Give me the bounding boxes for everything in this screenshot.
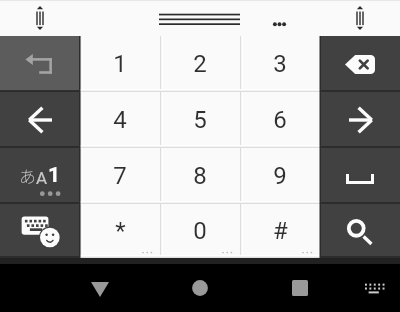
button[interactable]: 9 [240,148,320,204]
staticText: 1 [48,163,61,188]
button[interactable]: Undo [0,36,80,92]
button[interactable]: Resize keyboard [12,0,68,36]
button[interactable]: Move keyboard [149,0,250,36]
button[interactable]: Switch keyboard [350,264,400,312]
staticText: # [273,217,288,245]
staticText: 3 [273,50,287,78]
button[interactable]: 6 [240,92,320,148]
button[interactable]: Resize keyboard [332,0,388,36]
button[interactable]: Hide keyboard [65,264,135,312]
button[interactable]: 7 [80,148,160,204]
button[interactable]: Home [165,264,235,312]
staticText: 5 [193,106,207,134]
button[interactable]: 8 [160,148,240,204]
button[interactable]: 0 [160,204,240,258]
staticText: * [115,217,126,245]
button[interactable]: # [240,204,320,258]
button[interactable]: 1 [80,36,160,92]
button[interactable]: Space [320,148,400,204]
staticText: 7 [113,162,127,190]
button[interactable]: Move cursor left [0,92,80,148]
staticText: 0 [193,217,207,245]
button[interactable]: Move cursor right [320,92,400,148]
staticText: 2 [193,50,207,78]
staticText: 4 [113,106,127,134]
staticText: A [36,168,48,188]
button[interactable]: Search [320,204,400,258]
staticText: 9 [273,162,287,190]
button[interactable]: Change input mode [0,148,80,204]
staticText: あ [19,163,36,188]
button[interactable]: * [80,204,160,258]
button[interactable]: Emoji keyboard [0,204,80,258]
button[interactable]: Delete [320,36,400,92]
button[interactable]: 3 [240,36,320,92]
button[interactable]: 5 [160,92,240,148]
staticText: 1 [113,50,127,78]
staticText: 6 [273,106,287,134]
button[interactable]: 2 [160,36,240,92]
staticText: 8 [193,162,207,190]
button[interactable]: More options [254,0,305,36]
button[interactable]: Recent apps [265,264,335,312]
button[interactable]: 4 [80,92,160,148]
